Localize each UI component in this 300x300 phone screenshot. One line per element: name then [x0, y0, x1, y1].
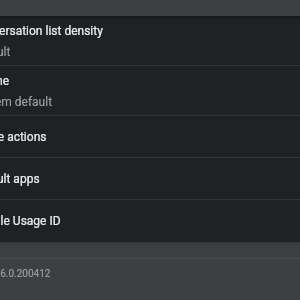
- button[interactable]: Theme: [0, 66, 300, 115]
- button[interactable]: Swipe actions: [0, 116, 300, 157]
- button[interactable]: Default apps: [0, 158, 300, 199]
- button[interactable]: Google Usage ID: [0, 200, 300, 241]
- staticText: Default: [0, 45, 11, 59]
- staticText: Swipe actions: [0, 130, 47, 144]
- staticText: Google Usage ID: [0, 214, 61, 228]
- staticText: Default apps: [0, 172, 40, 186]
- staticText: Theme: [0, 74, 10, 88]
- staticText: Conversation list density: [0, 24, 103, 38]
- staticText: System default: [0, 95, 53, 109]
- staticText: Version 6.0.200412: [0, 268, 51, 280]
- button[interactable]: Conversation list density: [0, 16, 300, 65]
